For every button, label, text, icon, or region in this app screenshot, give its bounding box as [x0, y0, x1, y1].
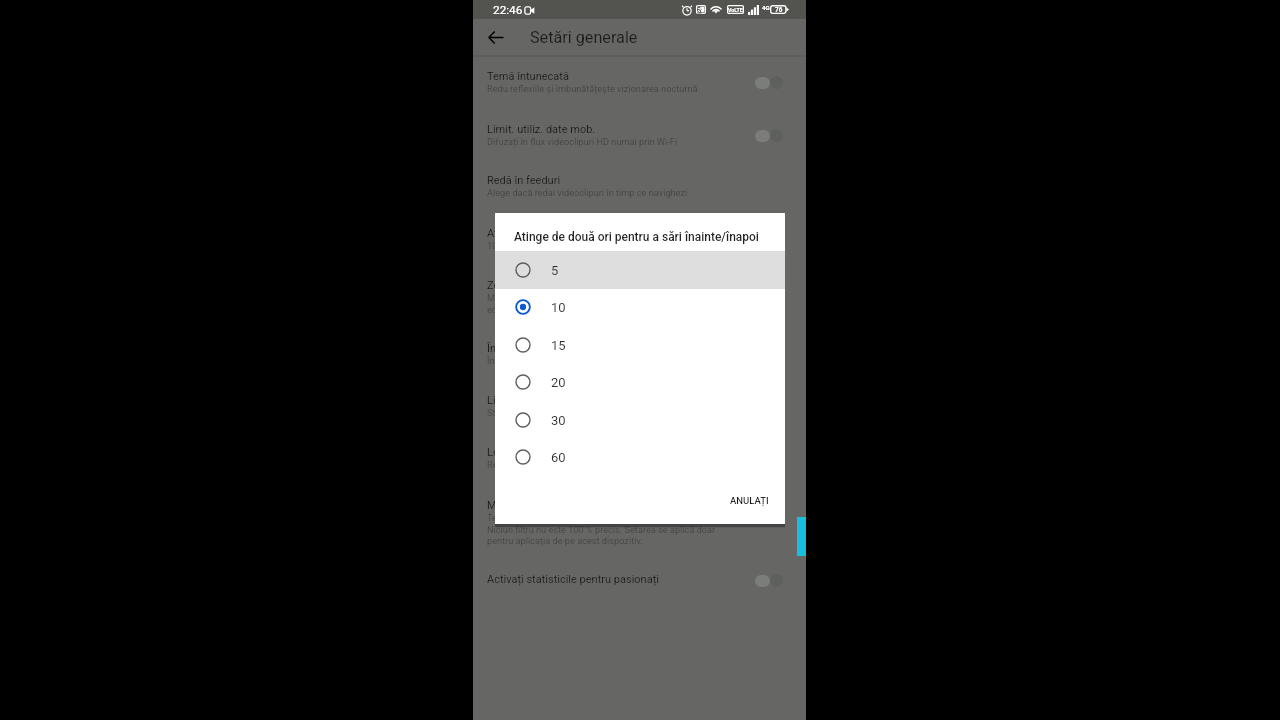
button[interactable]: Limitare volum [473, 379, 806, 423]
staticText: Măreşte videoclipul pentru a umple [487, 292, 631, 303]
button[interactable]: 10 [495, 288, 785, 326]
button[interactable]: Temă întunecată [473, 55, 806, 99]
button[interactable]: Redă în feeduri [473, 159, 806, 203]
button[interactable]: Back [478, 19, 514, 55]
staticText: Atinge de două ori pentru a sări înainte… [514, 230, 759, 244]
staticText: Temă întunecată [487, 70, 569, 83]
button[interactable]: 15 [495, 326, 785, 364]
button[interactable]: Toggle Limit. utiliz. date mob. [755, 129, 783, 142]
button[interactable]: 5 [495, 251, 785, 289]
staticText: Limitare volum [487, 394, 560, 407]
staticText: 10 secunde [487, 240, 535, 251]
staticText: Redă pe acest dispozitiv [487, 459, 586, 470]
staticText: 5 [551, 263, 559, 278]
staticText: 10 [551, 300, 566, 315]
button[interactable]: 20 [495, 363, 785, 401]
staticText: Întrerupere la deconectare [487, 342, 616, 355]
staticText: Te ajută să ascunzi videoclipurile cu co… [487, 512, 670, 523]
staticText: Alege dacă redai videoclipuri în timp ce… [487, 187, 688, 198]
button[interactable]: Activați statisticile pentru pasionați [473, 558, 806, 602]
button[interactable]: Toggle Mod restricţionat [755, 505, 783, 518]
staticText: Stabileşte volumul maxim [487, 407, 593, 418]
staticText: Setări generale [530, 28, 638, 47]
staticText: 76 [775, 6, 783, 14]
staticText: Activați statisticile pentru pasionați [487, 573, 659, 586]
button[interactable]: Toggle Temă întunecată [755, 76, 783, 89]
staticText: Difuzați în flux videoclipuri HD numai p… [487, 136, 678, 147]
button[interactable]: Atinge de două ori pentru a sări înainte… [473, 212, 806, 256]
staticText: ANULAȚI [730, 495, 769, 506]
staticText: ecranul [487, 304, 517, 315]
staticText: VoLTE [728, 7, 743, 13]
staticText: 60 [551, 450, 566, 465]
button[interactable]: 60 [495, 438, 785, 476]
staticText: Atinge de două ori pentru a sări înainte… [487, 227, 710, 240]
staticText: Redu reflexiile și îmbunătățește viziona… [487, 83, 698, 94]
button[interactable]: Întrerupere la deconectare [473, 327, 806, 371]
staticText: 20 [551, 375, 566, 390]
button[interactable]: Mod restricţionat [473, 484, 806, 528]
staticText: Niciun filtru nu este 100 % precis. Seta… [487, 524, 716, 535]
button[interactable]: 30 [495, 401, 785, 439]
button[interactable]: Limit. utiliz. date mob. [473, 108, 806, 152]
staticText: Zoom pentru umplere ecran [487, 279, 623, 292]
button[interactable]: Locul de redare [473, 431, 806, 475]
button[interactable]: Toggle Activați statisticile pentru pasi… [755, 574, 783, 587]
staticText: Redă în feeduri [487, 174, 561, 187]
staticText: pentru aplicaţia de pe acest dispozitiv. [487, 535, 643, 546]
staticText: Întrerupe redarea la deconectarea căştil… [487, 355, 658, 366]
staticText: 30 [551, 413, 566, 428]
staticText: 22:46 [493, 3, 523, 17]
staticText: 4G [762, 4, 770, 11]
button[interactable]: Zoom pentru umplere ecran [473, 264, 806, 308]
staticText: Locul de redare [487, 446, 563, 459]
staticText: Mod restricţionat [487, 499, 571, 512]
staticText: 15 [551, 338, 566, 353]
button[interactable]: ANULAȚI [722, 489, 777, 512]
staticText: Limit. utiliz. date mob. [487, 123, 596, 136]
